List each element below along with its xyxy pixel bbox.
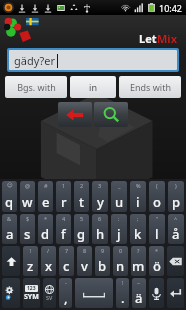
button[interactable]: ! bbox=[116, 278, 129, 308]
button[interactable]: ~ bbox=[132, 278, 146, 308]
button[interactable]: gear bbox=[2, 278, 20, 308]
button[interactable]: 0 bbox=[113, 246, 128, 276]
button[interactable]: ; bbox=[130, 214, 146, 244]
button[interactable]: 2 bbox=[74, 181, 89, 212]
button[interactable]: 8 bbox=[77, 246, 92, 276]
button[interactable]: Bgs. with bbox=[5, 76, 67, 98]
button[interactable]: & bbox=[2, 214, 17, 244]
staticText: r bbox=[61, 193, 67, 211]
staticText: k bbox=[134, 225, 142, 243]
staticText: Let bbox=[139, 31, 157, 46]
button[interactable]: 3 bbox=[92, 181, 108, 212]
staticText: 10:42 bbox=[159, 2, 183, 14]
button[interactable]: sym bbox=[23, 278, 40, 308]
staticText: ^ bbox=[174, 215, 178, 222]
staticText: 9 bbox=[101, 247, 105, 254]
button[interactable]: ) bbox=[168, 181, 184, 212]
button[interactable]: gädy?er bbox=[9, 50, 177, 70]
staticText: ~ bbox=[137, 279, 141, 286]
staticText: 6 bbox=[98, 215, 102, 222]
staticText: g bbox=[77, 225, 86, 243]
button[interactable]: ? bbox=[131, 246, 146, 276]
staticText: 0 bbox=[119, 247, 123, 254]
staticText: gädy?er bbox=[14, 53, 56, 68]
button[interactable]: _ bbox=[111, 181, 127, 212]
staticText: Mix bbox=[157, 31, 178, 46]
staticText: m bbox=[132, 257, 145, 275]
staticText: ; bbox=[137, 215, 139, 222]
staticText: 8 bbox=[83, 247, 87, 254]
button[interactable]: 1 bbox=[56, 181, 71, 212]
staticText: " bbox=[156, 215, 159, 222]
button[interactable]: shift bbox=[2, 246, 20, 276]
staticText: ! bbox=[30, 247, 32, 254]
button[interactable]: 5 bbox=[74, 214, 89, 244]
staticText: % bbox=[136, 182, 141, 189]
staticText: - bbox=[65, 279, 67, 286]
button[interactable]: / bbox=[41, 246, 56, 276]
staticText: w bbox=[22, 193, 33, 211]
staticText: & bbox=[7, 215, 12, 222]
staticText: 4 bbox=[62, 215, 66, 222]
button[interactable]: enter bbox=[167, 278, 184, 308]
staticText: 3 bbox=[98, 182, 102, 189]
button[interactable]: Ends with bbox=[119, 76, 181, 98]
button[interactable]: 9 bbox=[95, 246, 110, 276]
button[interactable]: del bbox=[167, 246, 184, 276]
staticText: s bbox=[24, 225, 31, 243]
button[interactable]: - bbox=[59, 278, 72, 308]
staticText: : bbox=[118, 215, 120, 222]
staticText: * bbox=[44, 215, 48, 222]
button[interactable]: : bbox=[111, 214, 127, 244]
button[interactable]: Back bbox=[58, 102, 92, 127]
staticText: a bbox=[6, 225, 14, 243]
button[interactable]: * bbox=[149, 246, 164, 276]
button[interactable]: $ bbox=[20, 214, 35, 244]
staticText: ☺ bbox=[7, 182, 13, 188]
staticText: ) bbox=[175, 182, 177, 189]
staticText: v bbox=[81, 257, 88, 275]
staticText: / bbox=[47, 247, 50, 254]
button[interactable]: 6 bbox=[92, 214, 108, 244]
staticText: i bbox=[136, 193, 140, 211]
button[interactable]: ^ bbox=[168, 214, 184, 244]
button[interactable]: in bbox=[70, 76, 116, 98]
button[interactable]: 7 bbox=[59, 246, 74, 276]
button[interactable]: @ bbox=[20, 181, 35, 212]
button[interactable]: ( bbox=[149, 181, 165, 212]
staticText: 123 bbox=[27, 285, 36, 292]
staticText: n bbox=[116, 257, 125, 275]
staticText: 5 bbox=[80, 215, 84, 222]
staticText: Ends with bbox=[130, 81, 171, 93]
staticText: f bbox=[61, 225, 66, 243]
staticText: ä bbox=[135, 289, 143, 307]
staticText: e bbox=[42, 193, 50, 211]
button[interactable]: globe bbox=[43, 278, 56, 308]
staticText: z bbox=[27, 257, 34, 275]
button[interactable]: ☺ bbox=[2, 181, 17, 212]
button[interactable]: mic bbox=[149, 278, 164, 308]
button[interactable]: 4 bbox=[56, 214, 71, 244]
staticText: _ bbox=[118, 182, 121, 189]
button[interactable]: # bbox=[38, 181, 53, 212]
button[interactable]: * bbox=[38, 214, 53, 244]
staticText: ? bbox=[137, 247, 140, 254]
staticText: å bbox=[172, 225, 180, 243]
staticText: # bbox=[44, 182, 48, 189]
staticText: y bbox=[97, 193, 104, 211]
staticText: SV bbox=[46, 294, 53, 301]
staticText: in bbox=[89, 81, 97, 93]
button[interactable]: ! bbox=[23, 246, 38, 276]
button[interactable]: " bbox=[149, 214, 165, 244]
button[interactable]: Search bbox=[94, 102, 128, 127]
button[interactable]: % bbox=[130, 181, 146, 212]
staticText: ! bbox=[122, 279, 124, 286]
button[interactable]: space bbox=[75, 278, 113, 308]
staticText: @ bbox=[25, 182, 30, 189]
staticText: u bbox=[115, 193, 124, 211]
staticText: , bbox=[64, 289, 68, 307]
staticText: ( bbox=[156, 182, 158, 189]
staticText: x bbox=[45, 257, 53, 275]
staticText: t bbox=[79, 193, 84, 211]
staticText: . bbox=[121, 289, 125, 307]
